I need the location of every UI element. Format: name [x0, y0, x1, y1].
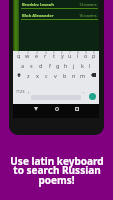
- staticText: 0: [93, 51, 95, 54]
- button[interactable]: o: [82, 50, 90, 60]
- staticText: 2: [27, 51, 29, 54]
- staticText: p: [92, 52, 96, 59]
- button[interactable]: m: [78, 70, 87, 80]
- button[interactable]: .: [82, 85, 86, 98]
- staticText: k: [81, 62, 84, 69]
- button[interactable]: a: [18, 60, 27, 70]
- staticText: r: [44, 52, 47, 59]
- button[interactable]: ?123: [13, 85, 27, 98]
- button[interactable]: j: [70, 60, 78, 70]
- staticText: 8: [77, 51, 79, 54]
- button[interactable]: r: [41, 50, 50, 60]
- staticText: 16 poems: [79, 13, 97, 17]
- staticText: 13 poems: [79, 2, 97, 6]
- button[interactable]: Brodsky Joseph: [13, 0, 99, 11]
- staticText: e: [35, 52, 39, 59]
- button[interactable]: l: [86, 60, 94, 70]
- button[interactable]: t: [50, 50, 58, 60]
- button[interactable]: f: [45, 60, 54, 70]
- staticText: 9: [85, 51, 87, 54]
- button[interactable]: e: [32, 50, 41, 60]
- staticText: b: [63, 72, 67, 79]
- staticText: x: [36, 72, 39, 79]
- button[interactable]: p: [90, 50, 98, 60]
- staticText: 4: [45, 51, 47, 54]
- button[interactable]: ,: [27, 85, 31, 98]
- button[interactable]: h: [62, 60, 70, 70]
- staticText: Blok Alexander: [22, 13, 54, 17]
- button[interactable]: b: [60, 70, 69, 80]
- staticText: u: [68, 52, 72, 59]
- staticText: 6: [61, 51, 63, 54]
- staticText: d: [39, 62, 43, 69]
- staticText: o: [84, 52, 88, 59]
- button[interactable]: Backspace: [87, 70, 99, 80]
- staticText: n: [72, 72, 76, 79]
- staticText: poems!: [38, 173, 75, 187]
- staticText: 3: [36, 51, 38, 54]
- staticText: 5: [53, 51, 55, 54]
- staticText: m: [80, 72, 86, 79]
- staticText: s: [30, 62, 33, 69]
- staticText: z: [27, 72, 30, 79]
- button[interactable]: y: [58, 50, 66, 60]
- staticText: g: [56, 62, 60, 69]
- staticText: i: [77, 52, 79, 59]
- button[interactable]: Recents: [71, 103, 82, 114]
- staticText: 1: [18, 51, 20, 54]
- button[interactable]: v: [51, 70, 60, 80]
- button[interactable]: n: [69, 70, 78, 80]
- button[interactable]: Search: [89, 93, 96, 100]
- staticText: j: [73, 62, 75, 69]
- staticText: q: [17, 52, 21, 59]
- button[interactable]: w: [23, 50, 32, 60]
- button[interactable]: u: [66, 50, 74, 60]
- staticText: l: [89, 62, 91, 69]
- button[interactable]: x: [33, 70, 42, 80]
- button[interactable]: c: [42, 70, 51, 80]
- button[interactable]: s: [27, 60, 36, 70]
- button[interactable]: k: [78, 60, 86, 70]
- button[interactable]: i: [74, 50, 82, 60]
- staticText: ,: [28, 88, 30, 95]
- button[interactable]: d: [36, 60, 45, 70]
- staticText: h: [64, 62, 68, 69]
- staticText: Brodsky Joseph: [22, 2, 54, 6]
- staticText: v: [54, 72, 57, 79]
- staticText: c: [45, 72, 48, 79]
- button[interactable]: Back: [30, 103, 41, 114]
- staticText: 7: [69, 51, 71, 54]
- staticText: f: [49, 62, 51, 69]
- staticText: .: [83, 88, 85, 95]
- staticText: w: [25, 52, 30, 59]
- staticText: y: [61, 52, 64, 59]
- button[interactable]: z: [24, 70, 33, 80]
- staticText: ?123: [16, 89, 25, 94]
- staticText: a: [21, 62, 25, 69]
- staticText: t: [53, 52, 55, 59]
- staticText: to search Russian: [13, 163, 101, 177]
- staticText: Use latin keyboard: [10, 154, 104, 168]
- button[interactable]: Shift: [13, 70, 24, 80]
- button[interactable]: Home: [51, 103, 62, 114]
- button[interactable]: g: [54, 60, 62, 70]
- button[interactable]: q: [14, 50, 23, 60]
- button[interactable]: Blok Alexander: [13, 11, 99, 22]
